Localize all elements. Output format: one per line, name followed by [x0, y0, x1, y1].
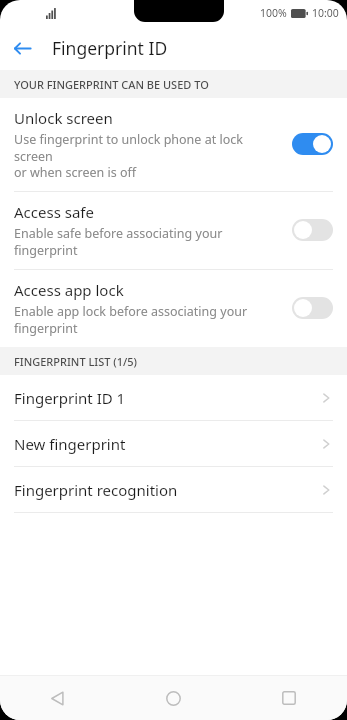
button[interactable]: Back [0, 676, 115, 720]
staticText: 100% [260, 6, 287, 20]
button[interactable]: Fingerprint ID 1 [0, 375, 347, 420]
staticText: New fingerprint [14, 434, 319, 454]
staticText: Fingerprint recognition [14, 480, 319, 500]
staticText: Use fingerprint to unlock phone at lock … [14, 131, 282, 180]
staticText: 10:00 [312, 6, 339, 20]
staticText: YOUR FINGERPRINT CAN BE USED TO [14, 77, 209, 92]
staticText: Enable app lock before associating your … [14, 303, 248, 336]
staticText: FINGERPRINT LIST (1/5) [14, 354, 137, 369]
staticText: Access safe [14, 202, 94, 222]
button[interactable]: Home [115, 676, 231, 720]
staticText: Access app lock [14, 280, 124, 300]
staticText: Fingerprint ID [52, 36, 168, 60]
button[interactable]: On [292, 133, 333, 155]
button[interactable]: New fingerprint [0, 421, 347, 466]
button[interactable]: Off [292, 297, 333, 319]
button[interactable]: Recents [231, 676, 347, 720]
staticText: Enable safe before associating your fing… [14, 225, 223, 258]
button[interactable]: Access safe [0, 192, 347, 269]
button[interactable]: Access app lock [0, 270, 347, 347]
staticText: Fingerprint ID 1 [14, 388, 319, 408]
button[interactable]: Back [0, 26, 44, 70]
button[interactable]: Fingerprint recognition [0, 467, 347, 512]
button[interactable]: Off [292, 219, 333, 241]
button[interactable]: Unlock screen [0, 98, 347, 191]
staticText: Unlock screen [14, 108, 113, 128]
